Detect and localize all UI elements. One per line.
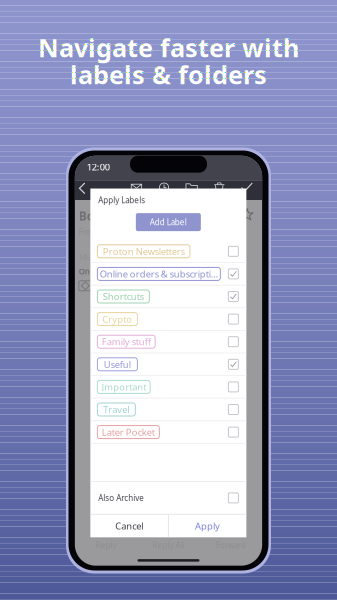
button[interactable]: Shortcuts bbox=[90, 286, 246, 308]
staticText: Cancel bbox=[115, 520, 143, 532]
button[interactable]: Crypto bbox=[90, 308, 246, 331]
button[interactable]: Delete bbox=[212, 181, 226, 200]
button[interactable]: Snooze bbox=[157, 181, 171, 200]
button[interactable]: Add Label bbox=[136, 213, 201, 231]
button[interactable]: Important bbox=[90, 376, 246, 399]
staticText: From: news@example.com bbox=[79, 227, 177, 237]
staticText: Online orders & subscripti… bbox=[100, 268, 218, 280]
staticText: Crypto bbox=[102, 313, 132, 325]
staticText: Apply Labels bbox=[98, 195, 145, 205]
staticText: Also Archive bbox=[98, 493, 144, 503]
button[interactable]: Apply bbox=[240, 181, 254, 200]
staticText: Travel bbox=[103, 403, 129, 416]
staticText: 12:00 bbox=[87, 161, 110, 173]
staticText: Important bbox=[101, 381, 146, 393]
staticText: Navigate faster with bbox=[38, 31, 299, 64]
staticText: Proton Newsletters bbox=[103, 245, 185, 257]
button[interactable]: Proton Newsletters bbox=[90, 240, 246, 263]
staticText: Bonjour bbox=[79, 208, 128, 224]
button[interactable]: Family stuff bbox=[90, 331, 246, 353]
button[interactable]: Travel bbox=[90, 399, 246, 421]
staticText: Shortcuts bbox=[103, 290, 144, 303]
staticText: Reply All bbox=[152, 540, 184, 550]
button[interactable]: Cancel bbox=[90, 515, 168, 537]
button[interactable]: Move to folder bbox=[185, 181, 199, 200]
button[interactable]: Mark unread bbox=[129, 181, 143, 200]
staticText: Useful bbox=[104, 358, 131, 370]
staticText: Reply bbox=[96, 540, 117, 550]
staticText: labels & folders bbox=[70, 58, 267, 91]
staticText: Add Label bbox=[150, 217, 187, 227]
staticText: Family stuff bbox=[102, 335, 151, 348]
button[interactable]: Apply bbox=[169, 515, 246, 537]
button[interactable]: Back bbox=[75, 181, 89, 200]
staticText: To: me bbox=[79, 252, 104, 262]
button[interactable]: Also Archive bbox=[90, 482, 246, 514]
button[interactable]: Later Pocket bbox=[90, 421, 246, 444]
staticText: Later Pocket bbox=[102, 426, 155, 438]
button[interactable]: Useful bbox=[90, 353, 246, 376]
button[interactable]: Online orders & subscripti… bbox=[90, 263, 246, 286]
staticText: On Tue, Jan 14 bbox=[79, 266, 134, 277]
staticText: Apply bbox=[195, 520, 220, 532]
